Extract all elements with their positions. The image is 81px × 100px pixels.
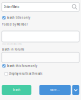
button[interactable]: Search titles only (2, 16, 30, 20)
button[interactable]: Dicker/Mario (2, 2, 79, 11)
button[interactable]: More... (39, 85, 71, 95)
staticText: Separate names with a comma. (2, 43, 22, 45)
button[interactable]: Display results as threads (5, 72, 42, 76)
button[interactable]: More search options (72, 85, 79, 95)
staticText: Dicker/Mario (4, 5, 20, 9)
staticText: Display results as threads (9, 72, 42, 75)
staticText: Search (13, 88, 21, 92)
staticText: More... (50, 88, 60, 92)
button[interactable]: Search (2, 85, 31, 95)
button[interactable]: Search this forum only (2, 64, 37, 68)
staticText: Search in Forums (2, 48, 24, 51)
staticText: Search titles only (7, 16, 30, 19)
staticText: Posted by Member (2, 23, 28, 26)
staticText: Search this forum only (7, 64, 37, 68)
